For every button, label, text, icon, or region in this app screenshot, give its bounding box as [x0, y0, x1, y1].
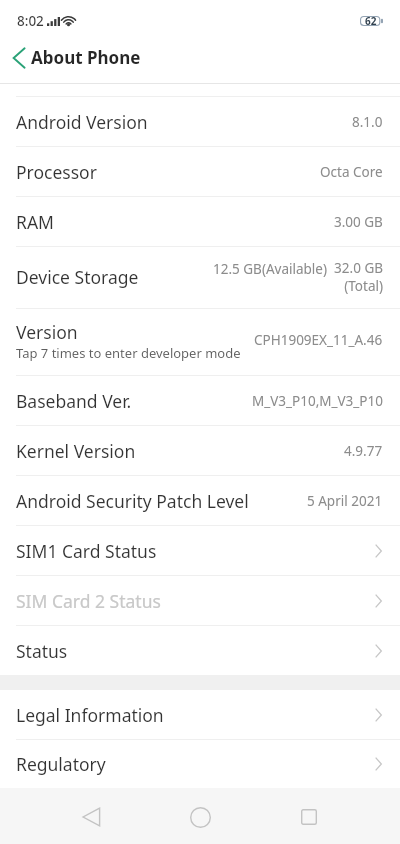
button[interactable]: Regulatory — [0, 740, 400, 788]
staticText: Octa Core — [320, 163, 383, 181]
staticText: Android Security Patch Level — [16, 489, 249, 513]
staticText: 5 April 2021 — [307, 492, 383, 510]
staticText: Baseband Ver. — [16, 389, 132, 413]
button[interactable]: Processor — [0, 147, 400, 196]
staticText: CPH1909EX_11_A.46 — [254, 331, 383, 349]
button[interactable]: Version — [0, 309, 400, 375]
button[interactable]: Back — [0, 40, 31, 75]
button[interactable]: Android Security Patch Level — [0, 476, 400, 525]
button[interactable]: Android Version — [0, 97, 400, 146]
button[interactable]: Device Storage — [0, 247, 400, 308]
button[interactable]: Status — [0, 626, 400, 675]
staticText: SIM Card 2 Status — [16, 589, 161, 613]
button[interactable]: SIM Card 2 Status — [0, 576, 400, 625]
staticText: 8.1.0 — [352, 113, 383, 131]
staticText: M_V3_P10,M_V3_P10 — [252, 392, 383, 410]
staticText: 8:02 — [17, 12, 44, 30]
staticText: Regulatory — [16, 752, 106, 776]
button[interactable]: Baseband Ver. — [0, 376, 400, 425]
staticText: Tap 7 times to enter developer mode — [16, 344, 241, 362]
staticText: About Phone — [31, 46, 141, 69]
staticText: SIM1 Card Status — [16, 539, 157, 563]
button[interactable]: Kernel Version — [0, 426, 400, 475]
staticText: Legal Information — [16, 703, 164, 727]
staticText: Kernel Version — [16, 439, 136, 463]
staticText: 62 — [365, 14, 377, 27]
button[interactable]: SIM1 Card Status — [0, 526, 400, 575]
button[interactable]: Back — [62, 790, 120, 844]
staticText: Processor — [16, 160, 97, 184]
button[interactable]: Recents — [280, 790, 338, 844]
button[interactable]: RAM — [0, 197, 400, 246]
button[interactable]: Home — [171, 790, 229, 844]
staticText: Android Version — [16, 110, 148, 134]
staticText: Device Storage — [16, 265, 139, 289]
staticText: 32.0 GB (Total) — [334, 259, 383, 295]
staticText: 12.5 GB(Available) — [213, 260, 327, 278]
staticText: 4.9.77 — [344, 442, 383, 460]
staticText: 3.00 GB — [334, 213, 383, 231]
staticText: Status — [16, 639, 68, 663]
staticText: RAM — [16, 210, 54, 234]
staticText: Version — [16, 320, 78, 344]
button[interactable]: Legal Information — [0, 690, 400, 739]
